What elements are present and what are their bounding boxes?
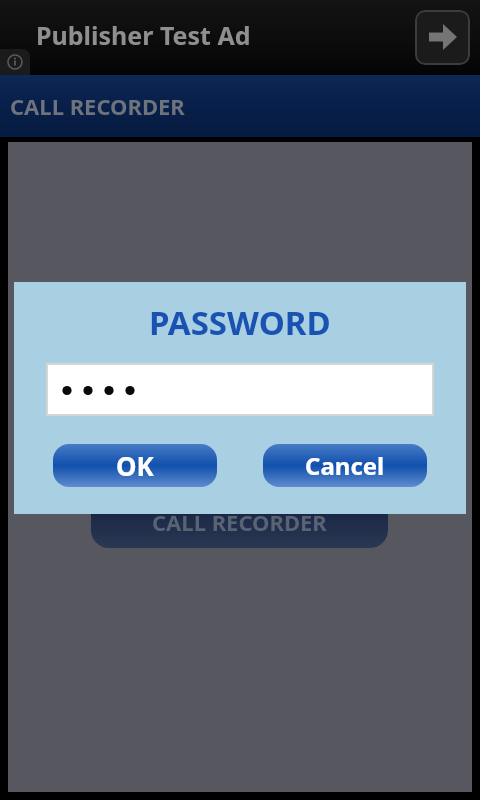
staticText: Publisher Test Ad xyxy=(36,18,251,52)
staticText: Cancel xyxy=(305,449,385,482)
button[interactable] xyxy=(0,49,30,75)
staticText: CALL RECORDER xyxy=(152,507,327,537)
staticText: OK xyxy=(116,448,154,483)
button[interactable]: Cancel xyxy=(263,444,427,487)
button[interactable] xyxy=(415,10,470,65)
button[interactable]: OK xyxy=(53,444,217,487)
staticText: CALL RECORDER xyxy=(10,91,185,121)
button[interactable]: Publisher Test Ad xyxy=(0,0,480,75)
button[interactable] xyxy=(46,363,434,416)
staticText: PASSWORD xyxy=(149,300,331,345)
button[interactable]: CALL RECORDER xyxy=(91,496,388,548)
